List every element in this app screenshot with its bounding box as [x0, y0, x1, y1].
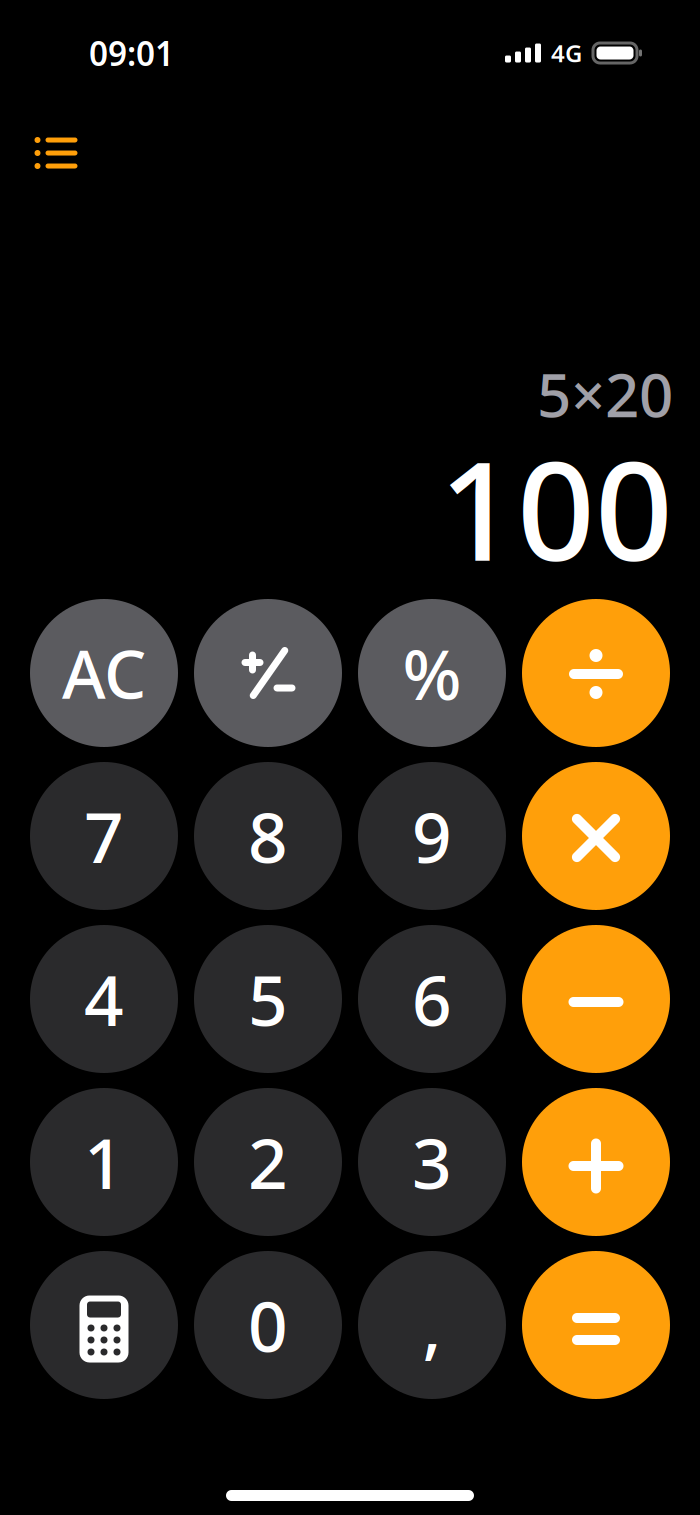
- staticText: 4G: [551, 37, 582, 69]
- button[interactable]: 8: [194, 762, 342, 910]
- staticText: 100: [439, 418, 673, 598]
- button[interactable]: Percent: [358, 599, 506, 747]
- button[interactable]: Plus minus: [194, 599, 342, 747]
- staticText: %: [402, 627, 461, 719]
- button[interactable]: Equals: [522, 1251, 670, 1399]
- staticText: 5: [248, 953, 288, 1045]
- button[interactable]: History: [0, 125, 87, 181]
- button[interactable]: 1: [30, 1088, 178, 1236]
- button[interactable]: Minus: [522, 925, 670, 1073]
- staticText: 3: [412, 1116, 452, 1208]
- staticText: 9: [412, 790, 452, 882]
- button[interactable]: 6: [358, 925, 506, 1073]
- staticText: ,: [422, 1279, 441, 1371]
- button[interactable]: Multiply: [522, 762, 670, 910]
- button[interactable]: Divide: [522, 599, 670, 747]
- button[interactable]: All clear: [30, 599, 178, 747]
- button[interactable]: Decimal separator: [358, 1251, 506, 1399]
- button[interactable]: 2: [194, 1088, 342, 1236]
- staticText: 0: [248, 1279, 288, 1371]
- staticText: 8: [248, 790, 288, 882]
- button[interactable]: 7: [30, 762, 178, 910]
- button[interactable]: Plus: [522, 1088, 670, 1236]
- button[interactable]: 0: [194, 1251, 342, 1399]
- staticText: 1: [84, 1116, 124, 1208]
- button[interactable]: Calculator: [30, 1251, 178, 1399]
- button[interactable]: 5: [194, 925, 342, 1073]
- staticText: 09:01: [89, 31, 174, 75]
- button[interactable]: 9: [358, 762, 506, 910]
- staticText: AC: [62, 629, 146, 717]
- staticText: 6: [412, 953, 452, 1045]
- staticText: 5×20: [537, 354, 673, 434]
- staticText: 2: [248, 1116, 288, 1208]
- button[interactable]: 3: [358, 1088, 506, 1236]
- staticText: 7: [84, 790, 124, 882]
- staticText: 4: [84, 953, 124, 1045]
- button[interactable]: 4: [30, 925, 178, 1073]
